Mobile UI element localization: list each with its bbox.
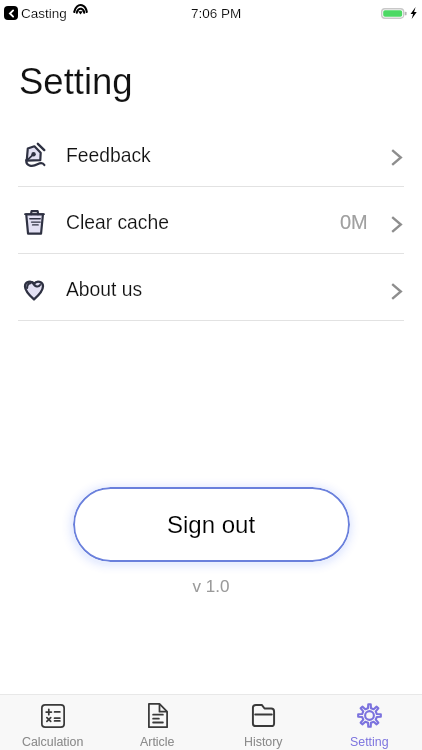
staticText: Sign out xyxy=(167,511,256,538)
button[interactable]: About us xyxy=(0,254,422,320)
staticText: 7:06 PM xyxy=(191,6,242,21)
button[interactable]: Setting xyxy=(316,695,422,750)
staticText: 0M xyxy=(340,211,368,233)
staticText: Setting xyxy=(350,735,389,749)
staticText: History xyxy=(244,735,283,749)
staticText: v 1.0 xyxy=(0,577,422,596)
staticText: Casting xyxy=(21,6,67,21)
button[interactable]: Feedback xyxy=(0,120,422,186)
button[interactable]: Clear cache xyxy=(0,187,422,253)
button[interactable]: History xyxy=(210,695,316,750)
staticText: About us xyxy=(66,279,143,301)
button[interactable]: Article xyxy=(105,695,210,750)
staticText: Setting xyxy=(19,61,133,102)
staticText: Article xyxy=(140,735,175,749)
button[interactable]: Calculation xyxy=(0,695,105,750)
button[interactable]: Sign out xyxy=(73,487,350,562)
staticText: Feedback xyxy=(66,145,151,167)
staticText: Clear cache xyxy=(66,212,169,234)
staticText: Calculation xyxy=(22,735,84,749)
